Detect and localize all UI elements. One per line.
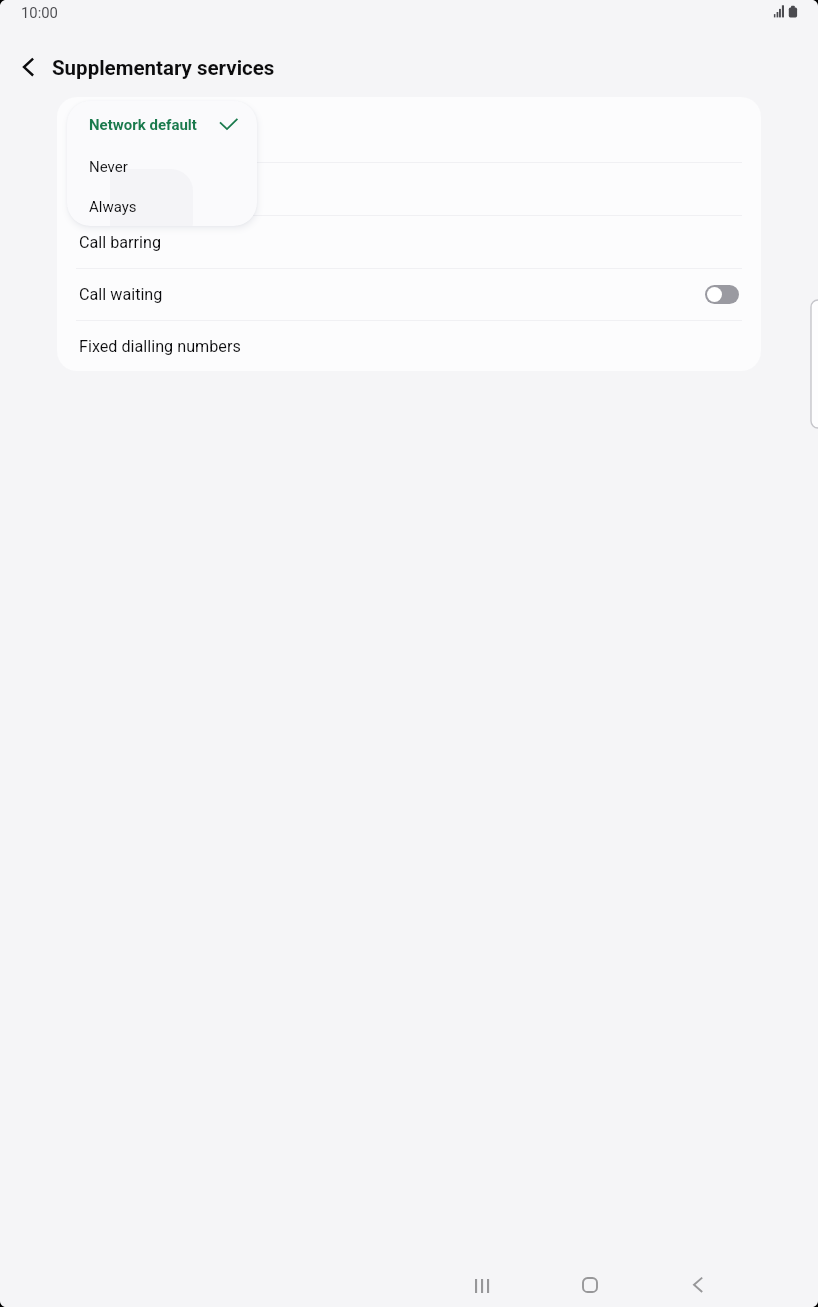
staticText: Network default [89, 116, 197, 134]
staticText: Supplementary services [52, 56, 275, 80]
button[interactable]: Recent apps [461, 1264, 505, 1307]
button[interactable]: Always [67, 188, 257, 226]
staticText: Never [89, 158, 128, 176]
button[interactable]: Network default [67, 104, 257, 146]
button[interactable]: Fixed dialling numbers [57, 321, 761, 371]
staticText: 10:00 [21, 4, 58, 21]
staticText: Fixed dialling numbers [79, 337, 241, 356]
button[interactable]: Call waiting [57, 269, 761, 320]
staticText: Call waiting [79, 285, 163, 304]
button[interactable]: Home [568, 1263, 612, 1307]
staticText: Caller ID [79, 120, 140, 139]
button[interactable]: Call forwarding [57, 163, 761, 215]
button[interactable]: Call waiting toggle [705, 285, 739, 304]
button[interactable]: Back [676, 1263, 720, 1307]
staticText: Always [89, 198, 137, 216]
button[interactable]: Navigate up [2, 45, 46, 89]
button[interactable]: Never [67, 146, 257, 188]
button[interactable]: Caller ID [57, 97, 761, 162]
button[interactable]: Call barring [57, 216, 761, 268]
staticText: Call barring [79, 233, 162, 252]
